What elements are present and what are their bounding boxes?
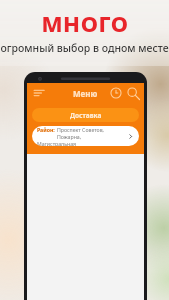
- button[interactable]: Menu: [31, 85, 47, 101]
- staticText: огромный выбор в одном месте: [0, 41, 169, 55]
- button[interactable]: Доставка: [32, 108, 139, 122]
- staticText: Магистральная: [37, 140, 77, 146]
- button[interactable]: Район:: [32, 126, 139, 146]
- staticText: Район:: [37, 126, 57, 133]
- staticText: Проспект Советов, Пожарна,: [57, 126, 127, 140]
- button[interactable]: Search: [126, 86, 140, 100]
- staticText: Доставка: [70, 111, 102, 120]
- staticText: МНОГО: [41, 8, 129, 38]
- button[interactable]: Working hours: [109, 86, 123, 100]
- staticText: Меню: [73, 88, 98, 99]
